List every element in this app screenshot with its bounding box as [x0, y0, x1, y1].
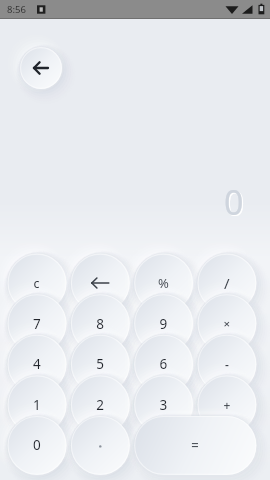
button[interactable]	[70, 294, 129, 353]
button[interactable]	[197, 334, 256, 393]
button[interactable]	[7, 253, 66, 312]
button[interactable]	[134, 253, 193, 312]
button[interactable]	[7, 415, 66, 474]
button[interactable]: Backspace	[70, 253, 129, 312]
button[interactable]	[70, 334, 129, 393]
button[interactable]	[134, 334, 193, 393]
button[interactable]	[134, 294, 193, 353]
button[interactable]	[7, 294, 66, 353]
button[interactable]	[70, 375, 129, 434]
button[interactable]: Decimal point	[70, 415, 129, 474]
button[interactable]: Back	[20, 47, 62, 89]
button[interactable]	[197, 375, 256, 434]
button[interactable]	[134, 375, 193, 434]
button[interactable]	[197, 253, 256, 312]
button[interactable]	[7, 375, 66, 434]
button[interactable]	[134, 415, 256, 474]
button[interactable]	[197, 294, 256, 353]
button[interactable]	[7, 334, 66, 393]
